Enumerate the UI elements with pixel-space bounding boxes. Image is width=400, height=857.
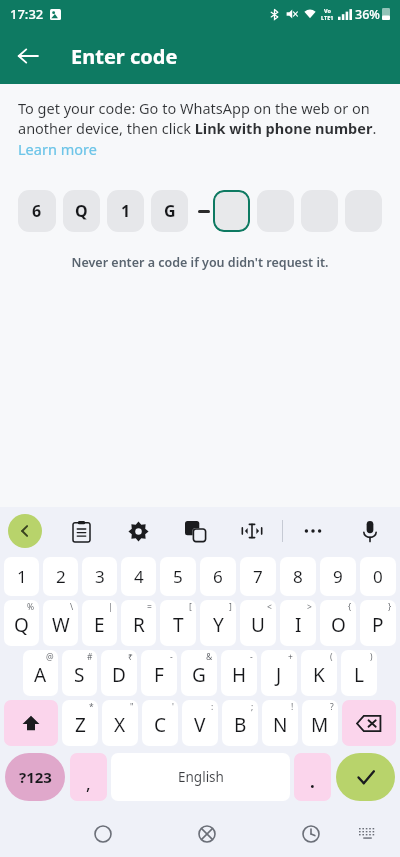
button[interactable]: Q bbox=[4, 600, 39, 646]
staticText: Enter code bbox=[71, 43, 178, 70]
staticText: M bbox=[311, 712, 329, 738]
button[interactable]: B bbox=[222, 700, 258, 746]
button[interactable] bbox=[345, 190, 382, 232]
staticText: ! bbox=[291, 701, 294, 713]
staticText: Vo bbox=[324, 7, 331, 14]
button[interactable]: L bbox=[341, 650, 377, 696]
button[interactable]: Settings bbox=[120, 513, 156, 549]
button[interactable]: 4 bbox=[121, 557, 156, 596]
button[interactable]: ?123 bbox=[5, 753, 65, 801]
button[interactable]: P bbox=[360, 600, 396, 646]
staticText: , bbox=[86, 772, 91, 795]
button[interactable]: , bbox=[70, 753, 107, 801]
staticText: Y bbox=[213, 612, 224, 638]
staticText: [ bbox=[189, 601, 192, 613]
staticText: 2 bbox=[56, 565, 66, 588]
staticText: LTE1 bbox=[321, 14, 334, 21]
button[interactable]: 3 bbox=[82, 557, 117, 596]
button[interactable]: Recents bbox=[285, 810, 337, 857]
button[interactable]: Clipboard bbox=[63, 513, 99, 549]
button[interactable]: 1 bbox=[107, 190, 144, 232]
button[interactable]: More options bbox=[295, 513, 331, 549]
button[interactable]: Y bbox=[200, 600, 236, 646]
staticText: > bbox=[307, 601, 312, 613]
button[interactable]: Expand toolbar bbox=[8, 514, 42, 548]
staticText: . bbox=[310, 770, 315, 793]
button[interactable]: Text editing bbox=[234, 513, 270, 549]
staticText: @ bbox=[46, 651, 54, 663]
button[interactable]: I bbox=[280, 600, 316, 646]
button[interactable]: Hide keyboard bbox=[350, 810, 384, 857]
staticText: ) bbox=[370, 651, 373, 663]
staticText: - bbox=[170, 651, 173, 663]
button[interactable]: Backspace bbox=[342, 700, 396, 746]
button[interactable]: 6 bbox=[200, 557, 236, 596]
button[interactable]: . bbox=[294, 753, 331, 801]
button[interactable]: 8 bbox=[280, 557, 316, 596]
staticText: ? bbox=[330, 701, 334, 713]
button[interactable]: Voice input bbox=[352, 513, 388, 549]
staticText: G bbox=[192, 662, 206, 688]
button[interactable]: 7 bbox=[240, 557, 276, 596]
button[interactable]: J bbox=[261, 650, 297, 696]
button[interactable]: F bbox=[141, 650, 177, 696]
staticText: ?123 bbox=[19, 767, 52, 787]
staticText: English bbox=[178, 768, 224, 786]
button[interactable]: 5 bbox=[160, 557, 196, 596]
button[interactable]: A bbox=[23, 650, 58, 696]
button[interactable]: Enter bbox=[336, 753, 395, 801]
staticText: # bbox=[87, 651, 93, 663]
button[interactable] bbox=[301, 190, 338, 232]
staticText: = bbox=[147, 601, 152, 613]
button[interactable]: C bbox=[142, 700, 178, 746]
staticText: < bbox=[267, 601, 272, 613]
button[interactable]: 0 bbox=[360, 557, 396, 596]
button[interactable]: 1 bbox=[4, 557, 39, 596]
button[interactable]: G bbox=[151, 190, 188, 232]
button[interactable]: Back bbox=[0, 28, 56, 84]
staticText: To get your code: Go to WhatsApp on the … bbox=[18, 98, 382, 160]
button[interactable]: E bbox=[82, 600, 117, 646]
button[interactable]: D bbox=[101, 650, 137, 696]
staticText: P bbox=[372, 612, 384, 638]
button[interactable]: O bbox=[320, 600, 356, 646]
staticText: Q bbox=[75, 200, 88, 222]
staticText: J bbox=[276, 662, 282, 688]
button[interactable] bbox=[257, 190, 294, 232]
staticText: U bbox=[251, 612, 265, 638]
button[interactable]: W bbox=[43, 600, 78, 646]
staticText: 1 bbox=[17, 565, 27, 588]
staticText: * bbox=[89, 701, 94, 713]
button[interactable]: Translate bbox=[177, 513, 213, 549]
button[interactable]: X bbox=[102, 700, 138, 746]
staticText: R bbox=[133, 612, 145, 638]
button[interactable]: 9 bbox=[320, 557, 356, 596]
button[interactable]: English bbox=[111, 753, 290, 801]
button[interactable]: T bbox=[160, 600, 196, 646]
staticText: 7 bbox=[253, 565, 263, 588]
staticText: : bbox=[211, 701, 214, 713]
button[interactable]: K bbox=[301, 650, 337, 696]
button[interactable]: Home bbox=[77, 810, 129, 857]
staticText: E bbox=[94, 612, 105, 638]
staticText: 1 bbox=[121, 200, 131, 222]
button[interactable] bbox=[213, 190, 250, 232]
button[interactable]: G bbox=[181, 650, 217, 696]
button[interactable]: Shift bbox=[4, 700, 58, 746]
button[interactable]: V bbox=[182, 700, 218, 746]
button[interactable]: Q bbox=[63, 190, 100, 232]
button[interactable]: S bbox=[62, 650, 97, 696]
button[interactable]: 2 bbox=[43, 557, 78, 596]
button[interactable]: Back bbox=[181, 810, 233, 857]
button[interactable]: Z bbox=[62, 700, 98, 746]
button[interactable]: N bbox=[262, 700, 298, 746]
button[interactable]: 6 bbox=[18, 190, 56, 232]
staticText: A bbox=[34, 662, 47, 688]
button[interactable]: U bbox=[240, 600, 276, 646]
staticText: H bbox=[232, 662, 247, 688]
button[interactable]: M bbox=[302, 700, 338, 746]
staticText: ] bbox=[229, 601, 232, 613]
staticText: G bbox=[164, 200, 176, 222]
button[interactable]: R bbox=[121, 600, 156, 646]
button[interactable]: H bbox=[221, 650, 257, 696]
